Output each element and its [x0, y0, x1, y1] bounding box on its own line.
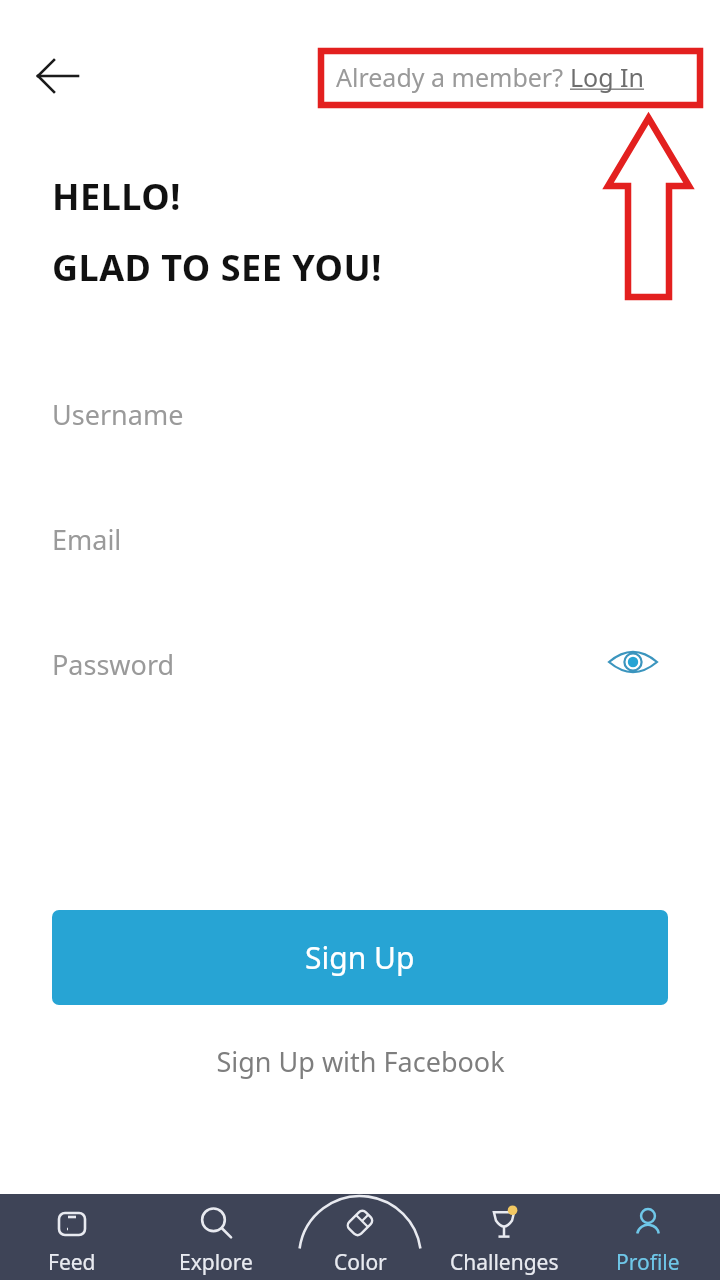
button[interactable]: Color [288, 1194, 432, 1280]
button[interactable]: Password [52, 638, 668, 690]
button[interactable]: Challenges [432, 1194, 576, 1280]
staticText: Explore [179, 1248, 253, 1277]
staticText: Email [52, 521, 122, 558]
button[interactable]: Sign Up [52, 910, 668, 1005]
staticText: Profile [616, 1248, 680, 1277]
button[interactable]: Email [52, 513, 668, 565]
button[interactable]: Back [18, 48, 94, 104]
button[interactable]: Feed [0, 1194, 144, 1280]
staticText: GLAD TO SEE YOU! [52, 243, 382, 292]
staticText: Password [52, 646, 175, 683]
staticText: HELLO! [52, 172, 181, 221]
staticText: Username [52, 396, 184, 433]
button[interactable]: Explore [144, 1194, 288, 1280]
button[interactable]: Username [52, 388, 668, 440]
button[interactable]: Show password [605, 634, 661, 690]
button[interactable]: Profile [576, 1194, 720, 1280]
staticText: Feed [48, 1248, 96, 1277]
staticText: Color [334, 1248, 387, 1277]
button[interactable]: Already a member? [336, 56, 645, 98]
staticText: Sign Up [305, 937, 415, 978]
staticText: Challenges [450, 1248, 559, 1277]
staticText: Log In [570, 60, 645, 94]
staticText: Already a member? [336, 60, 570, 94]
button[interactable]: Sign Up with Facebook [0, 1036, 720, 1086]
staticText: Sign Up with Facebook [216, 1043, 505, 1080]
